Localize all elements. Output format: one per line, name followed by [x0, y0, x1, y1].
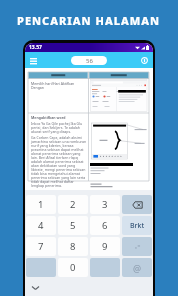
- button[interactable]: 3: [90, 195, 120, 214]
- staticText: @: [133, 262, 142, 274]
- other: Symbols: [133, 243, 142, 250]
- button[interactable]: 2: [58, 195, 88, 214]
- staticText: 6: [102, 219, 108, 232]
- button[interactable]: 9: [90, 237, 120, 256]
- staticText: 5: [70, 219, 76, 232]
- button[interactable]: Menu: [28, 55, 39, 66]
- staticText: 7: [38, 240, 44, 253]
- staticText: 0: [70, 261, 76, 274]
- staticText: 56: [86, 57, 93, 65]
- staticText: Brkt: [130, 221, 145, 231]
- staticText: 4: [38, 219, 44, 232]
- staticText: Mengaktifkan word: [31, 115, 66, 120]
- button[interactable]: @: [122, 258, 152, 277]
- button[interactable]: 6: [90, 216, 120, 235]
- staticText: 8: [70, 240, 76, 253]
- button[interactable]: Symbols: [122, 237, 152, 256]
- staticText: Ga Corben Caps, adalah aksimi jamachina …: [31, 135, 87, 188]
- button[interactable]: Brkt: [122, 216, 152, 235]
- button[interactable]: Info: [139, 55, 150, 66]
- staticText: 13.57: [29, 44, 42, 51]
- staticText: 1: [38, 198, 44, 211]
- other: Backspace: [132, 201, 143, 209]
- button[interactable]: Hide keyboard: [30, 282, 41, 293]
- staticText: 2: [70, 198, 76, 211]
- button[interactable]: 5: [58, 216, 88, 235]
- button[interactable]: 4: [26, 216, 56, 235]
- staticText: 9: [102, 240, 108, 253]
- button[interactable]: 1: [26, 195, 56, 214]
- button[interactable]: Backspace: [122, 195, 152, 214]
- button[interactable]: 56: [71, 56, 107, 65]
- button[interactable]: 0: [58, 258, 88, 277]
- staticText: Memilih hari/Hari Aktifkan Dengan: [31, 81, 87, 90]
- staticText: PENCARIAN HALAMAN: [17, 13, 161, 28]
- button[interactable]: 7: [26, 237, 56, 256]
- staticText: 3: [102, 198, 108, 211]
- button[interactable]: 8: [58, 237, 88, 256]
- staticText: Inbox Ya Ga Qile pachej Ika Glu pertsi, …: [31, 121, 87, 134]
